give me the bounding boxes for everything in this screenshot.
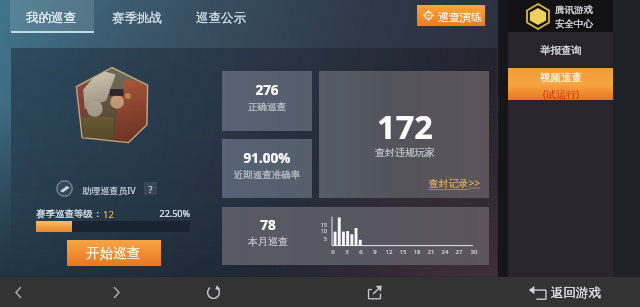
button[interactable]	[508, 68, 613, 100]
staticText: 12	[379, 248, 399, 256]
staticText: 查封违规玩家	[345, 146, 465, 159]
staticText: 巡查演练	[400, 10, 520, 24]
button[interactable]	[192, 0, 249, 32]
staticText: 我的巡查	[0, 10, 111, 26]
button[interactable]: 帮助	[144, 182, 157, 195]
staticText: 12	[103, 208, 114, 221]
staticText: 30	[464, 248, 484, 256]
staticText: 24	[435, 248, 455, 256]
staticText: 15	[393, 248, 413, 256]
button[interactable]: 返回游戏	[524, 277, 606, 307]
staticText: 近期巡查准确率	[207, 169, 327, 181]
staticText: 276	[207, 81, 327, 99]
staticText: 助理巡查员IV	[49, 184, 169, 196]
staticText: 正确巡查	[207, 101, 327, 113]
staticText: 91.00%	[207, 149, 327, 167]
staticText: 3	[337, 248, 357, 256]
staticText: 22.50%	[130, 207, 190, 219]
button[interactable]	[508, 36, 613, 64]
button[interactable]	[10, 0, 94, 32]
staticText: 9	[365, 248, 385, 256]
button[interactable]: 分享	[361, 277, 387, 307]
button[interactable]	[222, 139, 312, 198]
button[interactable]: 刷新	[200, 277, 226, 307]
button[interactable]	[417, 5, 485, 26]
staticText: 查封记录>>	[420, 176, 480, 190]
button[interactable]: 查封记录>>	[420, 176, 480, 190]
staticText: 本月巡查	[208, 235, 328, 248]
staticText: 6	[351, 248, 371, 256]
staticText: 腾讯游戏	[555, 4, 593, 16]
staticText: 视频巡查	[501, 71, 621, 84]
staticText: 举报查询	[501, 44, 621, 57]
button[interactable]	[222, 207, 489, 265]
staticText: 安全中心	[555, 18, 593, 30]
staticText: 15	[307, 221, 327, 228]
staticText: 赛季巡查等级：	[36, 208, 103, 220]
staticText: 78	[208, 216, 328, 234]
button[interactable]	[108, 0, 165, 32]
staticText: 18	[407, 248, 427, 256]
staticText: 0	[323, 248, 343, 256]
button[interactable]	[67, 240, 161, 266]
button[interactable]: 后退	[5, 277, 31, 307]
staticText: (试运行)	[501, 87, 621, 101]
staticText: 10	[307, 227, 327, 234]
staticText: 21	[421, 248, 441, 256]
staticText: 27	[449, 248, 469, 256]
staticText: ?	[144, 183, 157, 195]
staticText: 赛季挑战	[77, 10, 197, 26]
staticText: 返回游戏	[551, 285, 601, 301]
staticText: 开始巡查	[53, 245, 173, 262]
staticText: 172	[345, 104, 465, 148]
staticText: 5	[307, 235, 327, 242]
button[interactable]	[319, 71, 489, 198]
button[interactable]: 前进	[103, 277, 129, 307]
button[interactable]	[222, 71, 312, 131]
staticText: 巡查公示	[161, 10, 281, 26]
